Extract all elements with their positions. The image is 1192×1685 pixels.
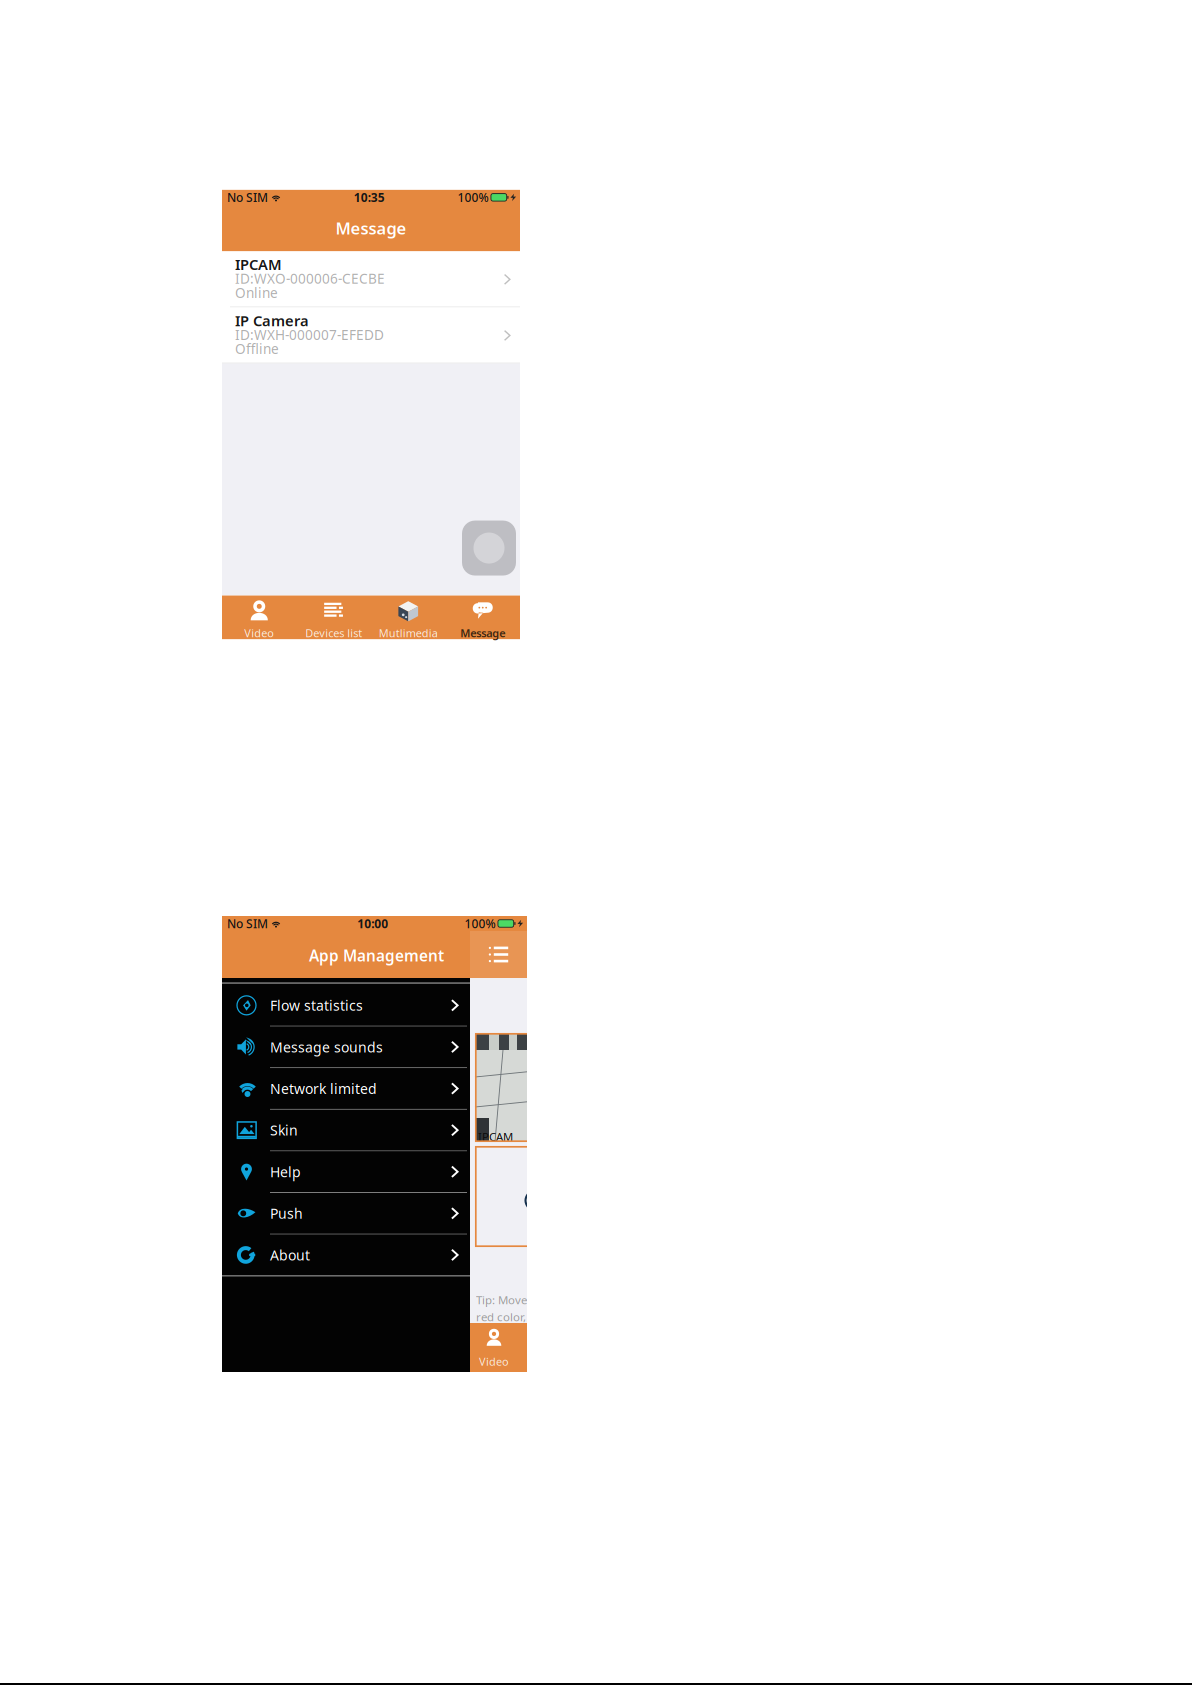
- staticText: IPCAM: [235, 254, 282, 274]
- staticText: Video: [244, 625, 274, 640]
- button[interactable]: Help: [222, 1151, 470, 1192]
- staticText: 10:00: [357, 915, 388, 932]
- staticText: Online: [235, 283, 278, 302]
- staticText: About: [270, 1245, 310, 1264]
- button[interactable]: Push: [222, 1193, 470, 1234]
- staticText: Skin: [270, 1121, 298, 1140]
- button[interactable]: Video: [222, 595, 296, 639]
- staticText: IPCAM: [478, 1129, 513, 1144]
- button[interactable]: IPCAM: [222, 251, 520, 306]
- button[interactable]: Menu: [470, 931, 527, 978]
- staticText: IP Camera: [235, 310, 309, 330]
- staticText: Video: [479, 1354, 509, 1369]
- staticText: ID:WXH-000007-EFEDD: [235, 325, 384, 344]
- button[interactable]: Network limited: [222, 1068, 470, 1109]
- staticText: Tip: Move v: [476, 1292, 536, 1308]
- staticText: Help: [270, 1162, 301, 1181]
- staticText: Push: [270, 1204, 303, 1223]
- staticText: Devices list: [305, 625, 362, 640]
- staticText: Offline: [235, 339, 279, 358]
- button[interactable]: Video: [463, 1324, 525, 1370]
- button[interactable]: Message sounds: [222, 1027, 470, 1067]
- staticText: No SIM: [227, 189, 268, 205]
- staticText: App Management: [309, 945, 444, 966]
- button[interactable]: About: [222, 1235, 470, 1275]
- button[interactable]: Message: [445, 595, 520, 639]
- button[interactable]: Skin: [222, 1110, 470, 1150]
- staticText: Mutlimedia: [379, 625, 438, 640]
- staticText: Message: [460, 625, 505, 640]
- staticText: 100%: [457, 189, 488, 205]
- button[interactable]: Mutlimedia: [371, 595, 445, 639]
- staticText: Message sounds: [270, 1037, 383, 1056]
- staticText: Message: [335, 217, 406, 239]
- staticText: Network limited: [270, 1079, 377, 1098]
- button[interactable]: Flow statistics: [222, 985, 470, 1026]
- staticText: No SIM: [227, 915, 268, 932]
- staticText: Flow statistics: [270, 996, 363, 1015]
- staticText: ID:WXO-000006-CECBE: [235, 269, 385, 288]
- staticText: red color, th: [476, 1309, 540, 1325]
- staticText: 10:35: [354, 189, 385, 205]
- button[interactable]: Devices list: [296, 595, 371, 639]
- button[interactable]: IP Camera: [222, 307, 520, 363]
- staticText: 100%: [464, 915, 495, 932]
